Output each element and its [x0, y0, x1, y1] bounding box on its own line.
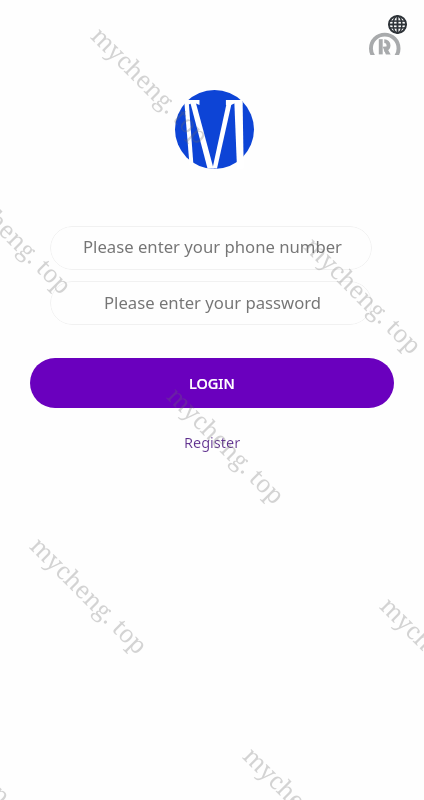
- button[interactable]: Please enter your password: [50, 281, 372, 325]
- staticText: Register: [184, 432, 241, 452]
- button[interactable]: LOGIN: [30, 358, 394, 408]
- staticText: mycheng. top: [260, 739, 414, 772]
- staticText: mycheng. top: [47, 529, 201, 562]
- button[interactable]: Register: [172, 430, 252, 454]
- button[interactable]: Language: [382, 9, 413, 40]
- staticText: Please enter your phone number: [83, 235, 342, 258]
- staticText: mycheng. top: [184, 379, 338, 412]
- staticText: mycheng. top: [321, 229, 424, 262]
- staticText: mycheng. top: [397, 589, 424, 622]
- staticText: LOGIN: [189, 373, 235, 393]
- button[interactable]: Please enter your phone number: [50, 226, 372, 270]
- staticText: Please enter your password: [104, 291, 322, 314]
- staticText: mycheng. top: [108, 19, 262, 52]
